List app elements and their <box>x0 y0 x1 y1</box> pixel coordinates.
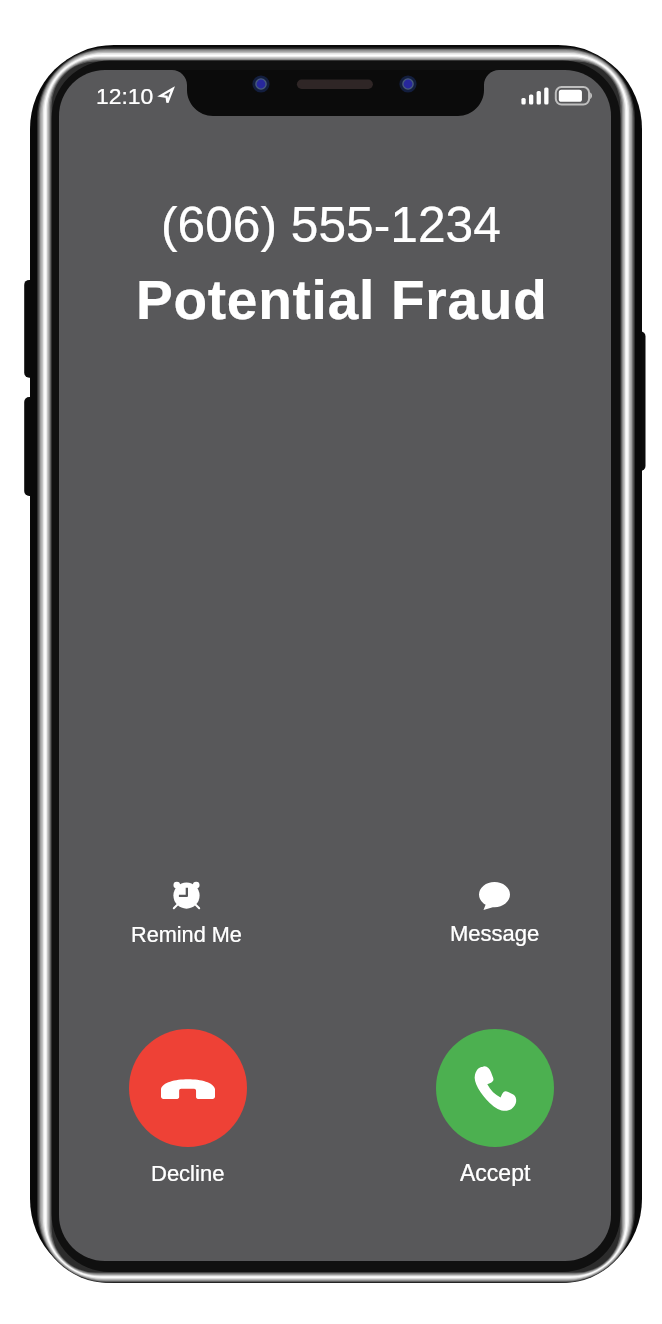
staticText: Remind Me <box>131 922 242 946</box>
other: Location active <box>160 88 173 103</box>
button[interactable]: Remind Me <box>86 864 286 942</box>
button[interactable]: Message <box>394 866 594 944</box>
button[interactable]: Decline <box>88 1029 288 1195</box>
staticText: (606) 555-1234 <box>161 197 501 253</box>
staticText: Potential Fraud <box>136 269 548 330</box>
staticText: Accept <box>460 1160 531 1186</box>
staticText: Message <box>450 921 540 946</box>
button[interactable]: Accept <box>395 1029 595 1194</box>
staticText: 12:10 <box>96 83 154 109</box>
staticText: Decline <box>151 1161 225 1186</box>
